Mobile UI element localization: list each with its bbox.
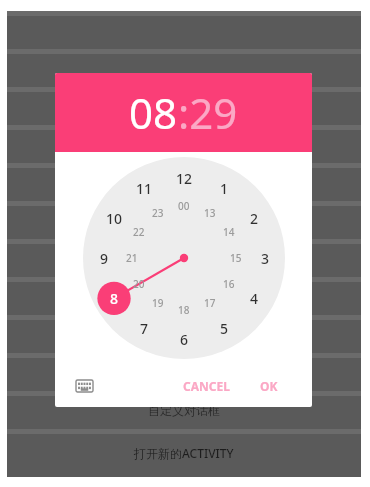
staticText: CANCEL: [183, 378, 230, 394]
staticText: 22: [133, 225, 145, 239]
staticText: 18: [178, 303, 190, 317]
staticText: 自定义对话框: [148, 403, 220, 418]
button[interactable]: 23: [147, 202, 169, 224]
staticText: 7: [140, 319, 149, 338]
button[interactable]: 15: [225, 247, 247, 269]
button[interactable]: 5: [211, 315, 237, 341]
button[interactable]: 10: [101, 205, 127, 231]
staticText: 21: [126, 251, 138, 265]
button[interactable]: 00: [173, 195, 195, 217]
staticText: 8: [110, 289, 119, 308]
button[interactable]: 16: [218, 273, 240, 295]
button[interactable]: 9: [91, 245, 117, 271]
button[interactable]: 3: [252, 245, 278, 271]
staticText: 5: [220, 319, 229, 338]
button[interactable]: 7: [131, 315, 157, 341]
staticText: 打开新的ACTIVITY: [134, 445, 234, 461]
button[interactable]: OK: [252, 370, 286, 402]
button[interactable]: CANCEL: [175, 370, 238, 402]
button[interactable]: 19: [147, 292, 169, 314]
staticText: 17: [204, 296, 216, 310]
staticText: 16: [223, 277, 235, 291]
button[interactable]: 8: [101, 285, 127, 311]
staticText: 2: [250, 209, 259, 228]
button[interactable]: 17: [199, 292, 221, 314]
button[interactable]: 12: [171, 165, 197, 191]
staticText: 00: [178, 199, 190, 213]
staticText: 23: [152, 206, 164, 220]
button[interactable]: 14: [218, 221, 240, 243]
staticText: 12: [176, 169, 193, 188]
staticText: OK: [260, 378, 278, 394]
button[interactable]: Switch to text input mode: [67, 369, 101, 403]
staticText: 15: [230, 251, 242, 265]
button[interactable]: 22: [128, 221, 150, 243]
button[interactable]: 打开新的ACTIVITY: [7, 434, 361, 472]
staticText: 14: [223, 225, 235, 239]
button[interactable]: 08: [55, 73, 312, 152]
staticText: 3: [261, 249, 270, 268]
button[interactable]: 自定义对话框: [7, 391, 361, 429]
staticText: 19: [152, 296, 164, 310]
button[interactable]: 13: [199, 202, 221, 224]
button[interactable]: 20: [128, 273, 150, 295]
staticText: 08: [129, 84, 178, 141]
button[interactable]: 6: [171, 326, 197, 352]
staticText: 1: [220, 179, 229, 198]
staticText: 20: [133, 277, 145, 291]
staticText: 10: [106, 209, 123, 228]
staticText: :29: [178, 84, 238, 141]
staticText: 6: [180, 330, 189, 349]
button[interactable]: 1: [211, 175, 237, 201]
button[interactable]: 2: [241, 205, 267, 231]
staticText: 11: [136, 179, 153, 198]
staticText: 4: [250, 289, 259, 308]
button[interactable]: 21: [121, 247, 143, 269]
button[interactable]: 18: [173, 299, 195, 321]
staticText: 9: [100, 249, 109, 268]
button[interactable]: 11: [131, 175, 157, 201]
staticText: 13: [204, 206, 216, 220]
button[interactable]: 4: [241, 285, 267, 311]
